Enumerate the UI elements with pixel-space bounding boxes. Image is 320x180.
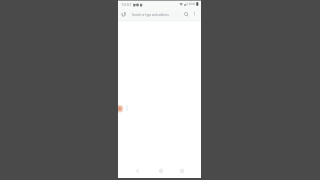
button[interactable]	[129, 11, 181, 19]
button[interactable]: Search or type web address	[132, 11, 184, 18]
button[interactable]: Reload page	[118, 9, 128, 19]
button[interactable]: Recent apps	[175, 164, 188, 177]
button[interactable]: Home	[154, 164, 167, 177]
button[interactable]: Search	[181, 9, 191, 19]
button[interactable]: Back	[130, 164, 143, 177]
staticText: 10:57	[121, 2, 132, 8]
staticText: Search or type web address	[132, 13, 169, 17]
button[interactable]: More options	[190, 9, 199, 18]
